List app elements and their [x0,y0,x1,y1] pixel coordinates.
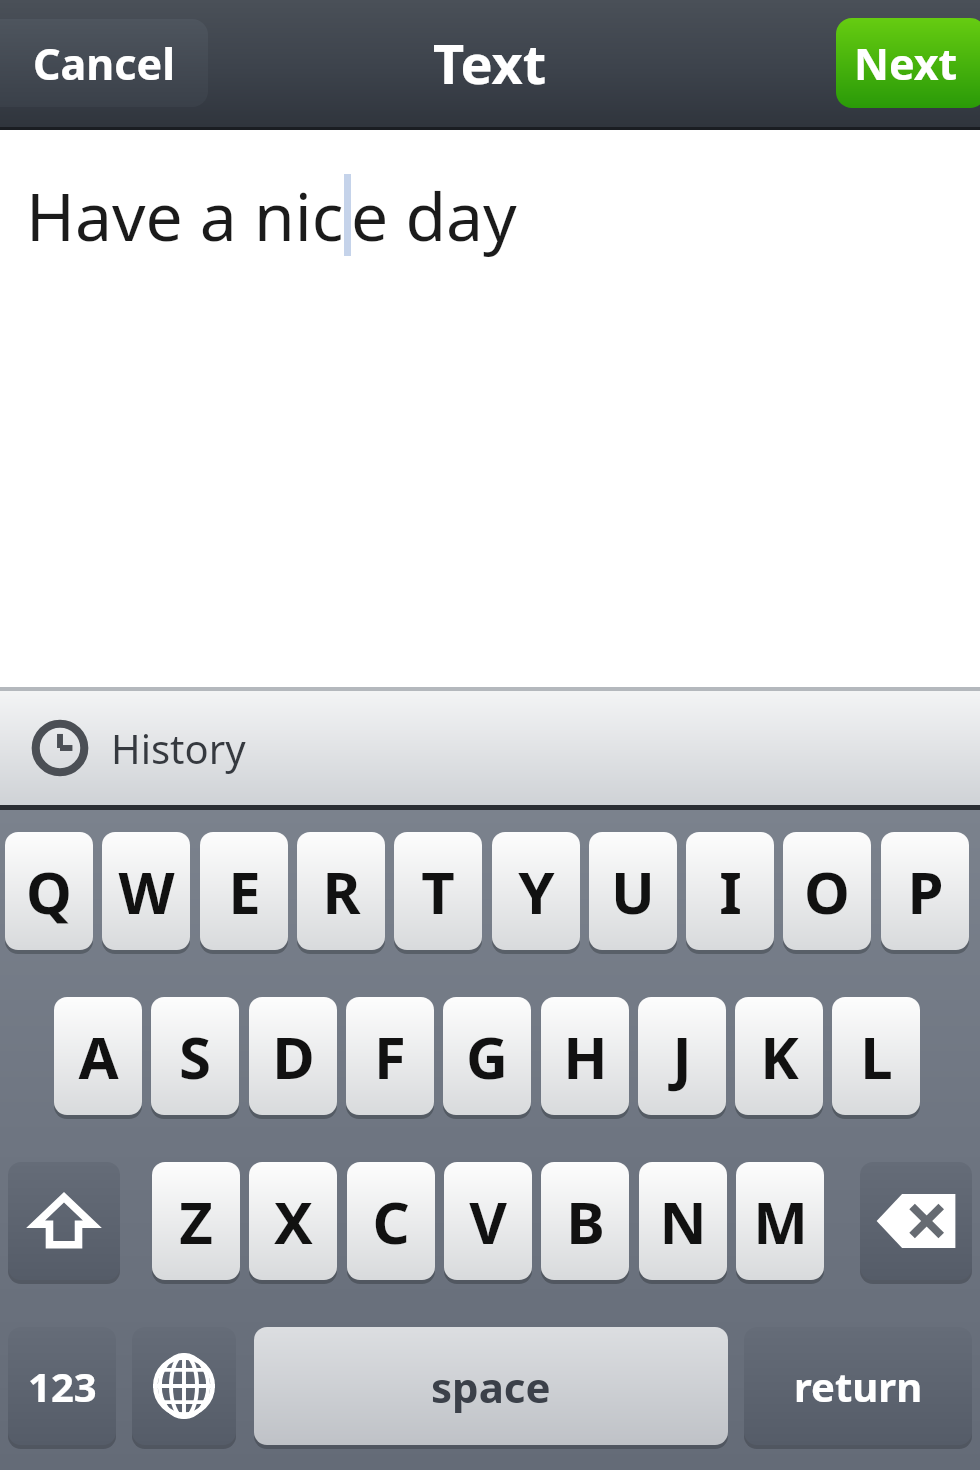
button[interactable]: B [541,1162,629,1280]
button[interactable]: O [783,832,871,950]
staticText: M [753,1182,808,1261]
button[interactable]: return [744,1327,972,1445]
button[interactable]: History [0,691,980,805]
staticText: F [374,1017,406,1096]
button[interactable]: Have a nic [0,130,980,687]
staticText: Next [854,34,958,93]
button[interactable]: F [346,997,434,1115]
staticText: E [228,852,261,931]
button[interactable]: P [881,832,969,950]
button[interactable]: Y [492,832,580,950]
staticText: return [794,1359,923,1413]
button[interactable]: Z [152,1162,240,1280]
button[interactable]: S [151,997,239,1115]
staticText: V [469,1182,507,1261]
staticText: C [372,1182,410,1261]
button[interactable]: Next [836,18,980,108]
button[interactable]: H [541,997,629,1115]
button[interactable]: C [347,1162,435,1280]
staticText: Text [433,26,547,100]
staticText: P [907,852,944,931]
staticText: R [322,852,361,931]
staticText: S [179,1017,211,1096]
staticText: Cancel [33,34,175,93]
button[interactable]: Shift [8,1162,120,1280]
button[interactable]: Q [5,832,93,950]
button[interactable]: M [736,1162,824,1280]
button[interactable]: V [444,1162,532,1280]
staticText: O [804,852,850,931]
staticText: A [78,1017,119,1096]
button[interactable]: I [686,832,774,950]
button[interactable]: U [589,832,677,950]
staticText: H [563,1017,608,1096]
staticText: G [466,1017,508,1096]
button[interactable]: D [249,997,337,1115]
button[interactable]: E [200,832,288,950]
staticText: B [566,1182,605,1261]
staticText: L [860,1017,893,1096]
button[interactable]: W [102,832,190,950]
button[interactable]: 123 [8,1327,116,1445]
staticText: X [274,1182,313,1261]
button[interactable]: K [735,997,823,1115]
staticText: space [431,1358,551,1415]
button[interactable]: J [638,997,726,1115]
staticText: J [672,1017,692,1096]
staticText: D [272,1017,315,1096]
staticText: U [611,852,655,931]
staticText: T [421,852,455,931]
staticText: Have a nic [26,170,344,260]
button[interactable]: Change keyboard language [132,1327,236,1445]
button[interactable]: X [249,1162,337,1280]
staticText: Z [179,1182,213,1261]
staticText: K [760,1017,799,1096]
button[interactable]: L [832,997,920,1115]
button[interactable]: T [394,832,482,950]
button[interactable]: Backspace [860,1162,972,1280]
button[interactable]: A [54,997,142,1115]
staticText: 123 [28,1359,97,1413]
staticText: I [719,852,742,931]
button[interactable]: space [254,1327,728,1445]
button[interactable]: N [639,1162,727,1280]
staticText: History [111,721,246,775]
staticText: N [659,1182,707,1261]
button[interactable]: R [297,832,385,950]
staticText: Q [26,852,72,931]
button[interactable]: Cancel [0,19,208,107]
staticText: W [118,852,175,931]
button[interactable]: G [443,997,531,1115]
staticText: e day [351,170,517,260]
staticText: Y [518,852,555,931]
